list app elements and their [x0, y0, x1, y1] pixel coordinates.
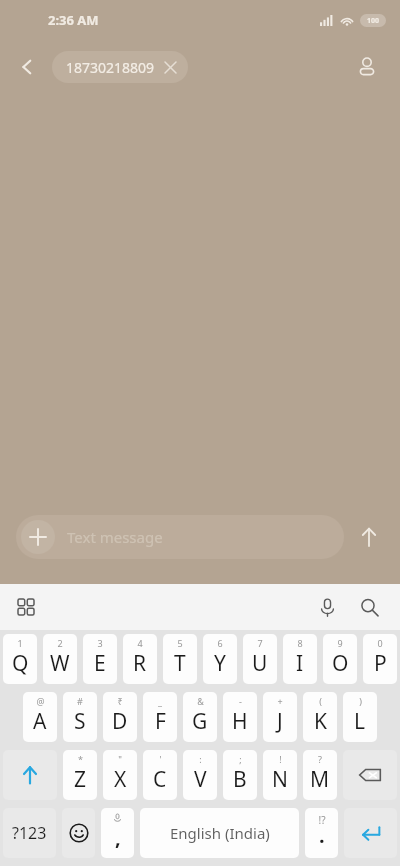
staticText: :	[199, 753, 202, 765]
staticText: English (India)	[170, 823, 270, 843]
button[interactable]: _	[143, 692, 177, 742]
staticText: R	[133, 649, 147, 678]
staticText: ?	[318, 753, 322, 765]
staticText: F	[155, 707, 166, 736]
staticText: _	[158, 695, 162, 707]
staticText: 2:36 AM	[48, 11, 99, 29]
staticText: Text message	[67, 527, 163, 547]
button[interactable]: Shift	[3, 750, 57, 800]
button[interactable]: "	[103, 750, 137, 800]
button[interactable]: Comma	[101, 808, 134, 858]
staticText: .	[319, 822, 325, 849]
staticText: V	[194, 765, 207, 794]
button[interactable]: 9	[323, 634, 357, 684]
button[interactable]: *	[63, 750, 97, 800]
staticText: Q	[12, 649, 29, 678]
button[interactable]: Contact info	[346, 46, 388, 88]
button[interactable]: Send	[344, 512, 394, 562]
button[interactable]: Add attachment	[16, 515, 344, 559]
staticText: ;	[239, 753, 242, 765]
button[interactable]: Add attachment	[21, 520, 55, 554]
staticText: H	[232, 707, 248, 736]
button[interactable]: 2	[43, 634, 77, 684]
button[interactable]: @	[23, 692, 57, 742]
staticText: +	[277, 695, 283, 707]
staticText: 5	[177, 637, 183, 649]
staticText: "	[118, 753, 122, 765]
button[interactable]: 8	[283, 634, 317, 684]
button[interactable]: ;	[223, 750, 257, 800]
staticText: N	[272, 765, 288, 794]
button[interactable]: 3	[83, 634, 117, 684]
staticText: E	[94, 649, 106, 678]
staticText: S	[74, 707, 86, 736]
staticText: 0	[377, 637, 383, 649]
staticText: I	[296, 649, 304, 678]
staticText: !?	[318, 813, 326, 827]
staticText: 1	[17, 637, 23, 649]
staticText: O	[332, 649, 349, 678]
staticText: 2	[57, 637, 63, 649]
button[interactable]: Backspace	[343, 750, 397, 800]
button[interactable]: &	[183, 692, 217, 742]
button[interactable]: Enter	[344, 808, 397, 858]
button[interactable]: 0	[363, 634, 397, 684]
button[interactable]: Period	[305, 808, 338, 858]
staticText: -	[239, 695, 242, 707]
staticText: ₹	[117, 695, 123, 707]
staticText: M	[310, 765, 330, 794]
staticText: X	[114, 765, 127, 794]
button[interactable]: #	[63, 692, 97, 742]
button[interactable]: '	[143, 750, 177, 800]
staticText: L	[354, 707, 366, 736]
staticText: Z	[74, 765, 87, 794]
button[interactable]: +	[263, 692, 297, 742]
staticText: 18730218809	[66, 58, 155, 77]
button[interactable]: ?	[303, 750, 337, 800]
staticText: @	[36, 695, 45, 707]
button[interactable]: Voice input	[306, 586, 348, 628]
staticText: *	[78, 753, 83, 765]
button[interactable]: 4	[123, 634, 157, 684]
button[interactable]: Space	[140, 808, 299, 858]
button[interactable]: ₹	[103, 692, 137, 742]
staticText: #	[77, 695, 83, 707]
button[interactable]: Keyboard menu	[8, 589, 44, 625]
button[interactable]: Symbols	[3, 808, 56, 858]
button[interactable]: 1	[3, 634, 37, 684]
button[interactable]: (	[303, 692, 337, 742]
button[interactable]: Emoji	[62, 808, 95, 858]
staticText: 3	[97, 637, 103, 649]
button[interactable]: -	[223, 692, 257, 742]
staticText: 7	[257, 637, 263, 649]
button[interactable]: :	[183, 750, 217, 800]
button[interactable]: 18730218809	[52, 51, 188, 83]
button[interactable]: 6	[203, 634, 237, 684]
staticText: !	[279, 753, 282, 765]
staticText: J	[277, 707, 283, 736]
button[interactable]: Back	[6, 46, 48, 88]
staticText: )	[359, 695, 362, 707]
button[interactable]: Search	[348, 586, 390, 628]
staticText: ,	[115, 824, 121, 851]
staticText: T	[174, 649, 186, 678]
staticText: P	[374, 649, 387, 678]
staticText: 8	[297, 637, 303, 649]
staticText: G	[192, 707, 208, 736]
staticText: A	[33, 707, 47, 736]
staticText: 9	[337, 637, 343, 649]
staticText: 6	[217, 637, 223, 649]
staticText: ?123	[12, 822, 47, 844]
button[interactable]: 7	[243, 634, 277, 684]
button[interactable]: )	[343, 692, 377, 742]
staticText: (	[319, 695, 322, 707]
staticText: U	[252, 649, 268, 678]
button[interactable]: 5	[163, 634, 197, 684]
button[interactable]: !	[263, 750, 297, 800]
staticText: W	[50, 649, 70, 678]
staticText: '	[159, 753, 162, 765]
staticText: 100	[367, 16, 380, 26]
staticText: &	[197, 695, 204, 707]
staticText: 4	[137, 637, 143, 649]
staticText: K	[314, 707, 327, 736]
